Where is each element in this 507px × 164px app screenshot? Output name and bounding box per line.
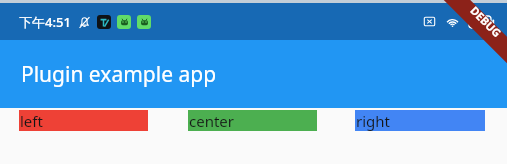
- other: Silent mode: [78, 16, 91, 29]
- button[interactable]: center: [188, 110, 317, 131]
- other: Wi-Fi: [445, 16, 460, 28]
- staticText: Plugin example app: [21, 60, 217, 89]
- staticText: 100: [474, 17, 487, 27]
- staticText: center: [189, 111, 235, 131]
- staticText: DEBUG: [467, 3, 505, 40]
- other: Battery 100 percent: [469, 16, 494, 28]
- button[interactable]: right: [355, 110, 485, 131]
- other: No SIM card: [423, 15, 436, 28]
- staticText: left: [20, 111, 43, 131]
- other: App notification: [117, 15, 131, 29]
- staticText: right: [356, 111, 390, 131]
- other: App notification: [97, 15, 111, 29]
- other: App notification: [137, 15, 151, 29]
- staticText: 下午4:51: [19, 13, 71, 31]
- button[interactable]: left: [19, 110, 148, 131]
